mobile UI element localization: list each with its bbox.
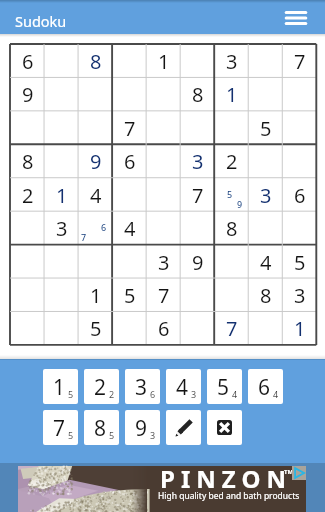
button[interactable]: Menu	[280, 0, 312, 34]
button[interactable]: 3	[180, 144, 214, 177]
button[interactable]	[112, 245, 146, 278]
button[interactable]: 1	[146, 44, 180, 77]
button[interactable]	[112, 311, 146, 344]
button[interactable]	[78, 111, 112, 144]
button[interactable]	[112, 77, 146, 110]
button[interactable]	[10, 278, 44, 311]
button[interactable]	[146, 144, 180, 177]
button[interactable]	[248, 144, 282, 177]
button[interactable]: 1	[78, 278, 112, 311]
staticText: 2	[109, 388, 115, 400]
button[interactable]: 4	[112, 211, 146, 244]
button[interactable]	[44, 144, 78, 177]
button[interactable]: 5	[207, 369, 242, 404]
button[interactable]	[44, 44, 78, 77]
button[interactable]: 2	[10, 178, 44, 211]
button[interactable]	[10, 245, 44, 278]
button[interactable]: 7	[214, 311, 248, 344]
button[interactable]: 6	[146, 311, 180, 344]
button[interactable]: 6	[248, 369, 283, 404]
button[interactable]	[214, 245, 248, 278]
button[interactable]	[146, 77, 180, 110]
button[interactable]	[214, 278, 248, 311]
button[interactable]	[10, 311, 44, 344]
button[interactable]: 4	[166, 369, 201, 404]
button[interactable]: 7	[43, 410, 78, 445]
button[interactable]	[10, 111, 44, 144]
button[interactable]: 2	[84, 369, 119, 404]
button[interactable]: 7	[146, 278, 180, 311]
button[interactable]: 6	[10, 44, 44, 77]
button[interactable]: 7	[180, 178, 214, 211]
button[interactable]: 3	[44, 211, 78, 244]
button[interactable]: 1	[43, 369, 78, 404]
button[interactable]: Ad choices	[292, 466, 306, 480]
button[interactable]	[44, 311, 78, 344]
button[interactable]: 9	[125, 410, 160, 445]
button[interactable]	[282, 144, 316, 177]
button[interactable]: 3	[125, 369, 160, 404]
button[interactable]: Clear	[207, 410, 242, 445]
button[interactable]	[146, 211, 180, 244]
staticText: 5	[68, 429, 74, 441]
button[interactable]	[180, 278, 214, 311]
button[interactable]: 8	[248, 278, 282, 311]
button[interactable]: 9	[180, 245, 214, 278]
button[interactable]: 1	[282, 311, 316, 344]
button[interactable]	[44, 111, 78, 144]
button[interactable]	[78, 77, 112, 110]
button[interactable]: 4	[248, 245, 282, 278]
button[interactable]: 8	[84, 410, 119, 445]
button[interactable]: 3	[282, 278, 316, 311]
button[interactable]: 1	[44, 178, 78, 211]
button[interactable]: 6	[282, 178, 316, 211]
button[interactable]	[180, 211, 214, 244]
button[interactable]: 8	[10, 144, 44, 177]
button[interactable]: 5	[112, 278, 146, 311]
button[interactable]: 7	[282, 44, 316, 77]
button[interactable]: 3	[214, 44, 248, 77]
button[interactable]: 9	[10, 77, 44, 110]
staticText: 6	[150, 388, 156, 400]
button[interactable]	[112, 178, 146, 211]
button[interactable]: 8	[180, 77, 214, 110]
button[interactable]	[44, 77, 78, 110]
button[interactable]: 4	[78, 178, 112, 211]
button[interactable]: 3	[248, 178, 282, 211]
button[interactable]	[78, 245, 112, 278]
button[interactable]: 3	[146, 245, 180, 278]
button[interactable]: 8	[214, 211, 248, 244]
button[interactable]	[10, 211, 44, 244]
button[interactable]: 6	[78, 211, 112, 244]
button[interactable]: 9	[78, 144, 112, 177]
button[interactable]	[180, 311, 214, 344]
button[interactable]	[248, 311, 282, 344]
button[interactable]: 2	[214, 144, 248, 177]
button[interactable]	[44, 278, 78, 311]
button[interactable]: Pencil notes	[166, 410, 201, 445]
button[interactable]	[282, 211, 316, 244]
button[interactable]	[112, 44, 146, 77]
button[interactable]	[282, 77, 316, 110]
button[interactable]: 5	[78, 311, 112, 344]
button[interactable]	[248, 44, 282, 77]
button[interactable]: 5	[248, 111, 282, 144]
button[interactable]: 5	[282, 245, 316, 278]
button[interactable]	[214, 111, 248, 144]
staticText: 6	[22, 48, 34, 75]
button[interactable]: 5	[214, 178, 248, 211]
button[interactable]	[248, 77, 282, 110]
button[interactable]	[44, 245, 78, 278]
button[interactable]: 6	[112, 144, 146, 177]
button[interactable]: PINZON	[18, 466, 306, 512]
button[interactable]	[146, 111, 180, 144]
button[interactable]	[180, 44, 214, 77]
button[interactable]: 7	[112, 111, 146, 144]
button[interactable]	[146, 178, 180, 211]
staticText: 4	[232, 388, 238, 400]
button[interactable]: 8	[78, 44, 112, 77]
button[interactable]: 1	[214, 77, 248, 110]
button[interactable]	[180, 111, 214, 144]
button[interactable]	[282, 111, 316, 144]
button[interactable]	[248, 211, 282, 244]
